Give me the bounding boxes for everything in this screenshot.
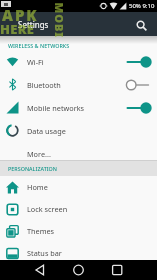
button[interactable]: More...: [0, 142, 157, 165]
staticText: Bluetooth: [27, 80, 61, 90]
staticText: APK: [2, 5, 39, 25]
staticText: HERE: [0, 20, 35, 38]
button[interactable]: [135, 19, 149, 33]
staticText: WIRELESS & NETWORKS: [8, 42, 70, 49]
staticText: 50% 9:10: [129, 2, 155, 10]
staticText: Home: [27, 182, 48, 192]
staticText: Lock screen: [27, 204, 68, 214]
staticText: Status bar: [27, 248, 62, 258]
button[interactable]: Status bar: [0, 242, 157, 264]
staticText: PERSONALIZATION: [8, 165, 57, 172]
staticText: Data usage: [27, 126, 66, 136]
staticText: Mobile networks: [27, 103, 85, 113]
staticText: More...: [27, 149, 51, 159]
button[interactable]: Data usage: [0, 119, 157, 142]
staticText: Themes: [27, 226, 55, 236]
staticText: MOBI: [51, 2, 66, 38]
button[interactable]: [103, 260, 131, 280]
button[interactable]: [64, 260, 92, 280]
button[interactable]: [26, 260, 54, 280]
staticText: Wi-Fi: [27, 57, 44, 67]
button[interactable]: Bluetooth: [0, 73, 157, 96]
button[interactable]: Mobile networks: [0, 96, 157, 119]
button[interactable]: Lock screen: [0, 198, 157, 220]
button[interactable]: Wi-Fi: [0, 50, 157, 73]
button[interactable]: Themes: [0, 220, 157, 242]
button[interactable]: Home: [0, 176, 157, 198]
staticText: Settings: [18, 19, 49, 30]
